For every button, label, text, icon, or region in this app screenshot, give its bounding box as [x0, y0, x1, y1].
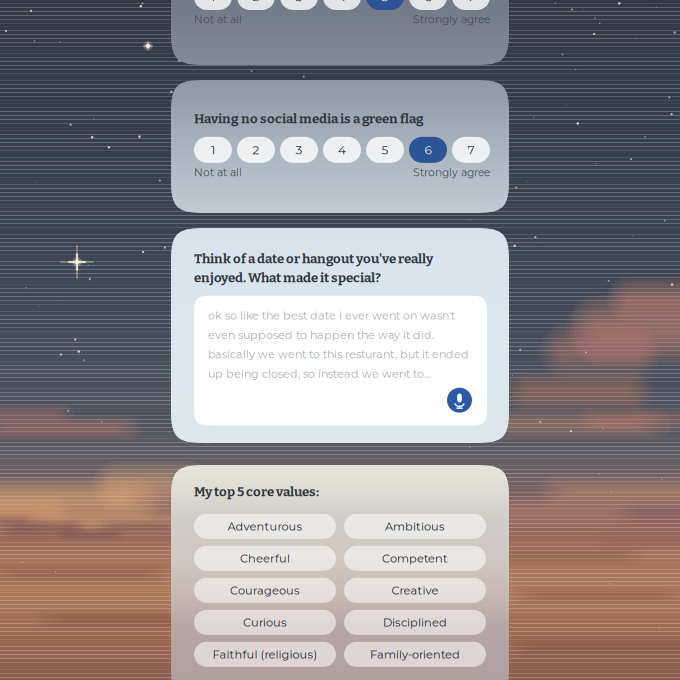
staticText: Creative [391, 583, 438, 597]
staticText: Disciplined [383, 615, 447, 629]
staticText: Ambitious [385, 519, 445, 533]
button[interactable]: Competent [344, 546, 486, 571]
staticText: Think of a date or hangout you've really [194, 251, 433, 267]
button[interactable]: 2 [237, 0, 275, 10]
button[interactable]: 2 [237, 137, 275, 163]
staticText: 3 [295, 142, 302, 157]
staticText: Competent [382, 551, 448, 565]
staticText: 4 [338, 0, 346, 4]
staticText: Not at all [194, 13, 242, 26]
staticText: 2 [252, 142, 259, 157]
button[interactable]: 7 [452, 0, 490, 10]
staticText: 7 [467, 142, 474, 157]
button[interactable]: Ambitious [344, 514, 486, 539]
button[interactable]: 1 [194, 137, 232, 163]
button[interactable]: 4 [323, 137, 361, 163]
button[interactable]: Curious [194, 610, 336, 635]
button[interactable]: Record voice answer [447, 388, 472, 413]
staticText: Faithful (religious) [212, 647, 317, 661]
staticText: 5 [381, 0, 388, 4]
staticText: 6 [424, 0, 431, 4]
staticText: ok so like the best date i ever went on … [208, 309, 455, 322]
staticText: My top 5 core values: [194, 484, 319, 500]
staticText: 1 [211, 142, 215, 157]
button[interactable]: 5 [366, 137, 404, 163]
staticText: Having no social media is a green flag [194, 111, 424, 127]
staticText: 7 [467, 0, 474, 4]
staticText: up being closed, so instead we went to… [208, 367, 431, 381]
staticText: Strongly agree [413, 13, 490, 26]
staticText: 5 [381, 142, 388, 157]
staticText: 3 [295, 0, 302, 4]
button[interactable]: 1 [194, 0, 232, 10]
staticText: Not at all [194, 166, 242, 179]
staticText: 4 [338, 142, 346, 157]
staticText: Adventurous [227, 519, 302, 533]
staticText: 2 [252, 0, 259, 4]
button[interactable]: Faithful (religious) [194, 642, 336, 667]
button[interactable]: Adventurous [194, 514, 336, 539]
button[interactable]: 6 [409, 0, 447, 10]
staticText: Cheerful [240, 551, 290, 565]
staticText: 6 [424, 142, 431, 157]
button[interactable]: 7 [452, 137, 490, 163]
staticText: Curious [243, 615, 287, 629]
button[interactable]: 5 [366, 0, 404, 10]
staticText: Courageous [230, 583, 300, 597]
button[interactable]: Creative [344, 578, 486, 603]
staticText: 1 [211, 0, 215, 4]
button[interactable]: 4 [323, 0, 361, 10]
staticText: enjoyed. What made it special? [194, 270, 381, 286]
staticText: Family-oriented [370, 647, 460, 661]
staticText: even supposed to happen the way it did. [208, 328, 434, 342]
button[interactable]: 3 [280, 137, 318, 163]
button[interactable]: Cheerful [194, 546, 336, 571]
button[interactable]: 3 [280, 0, 318, 10]
button[interactable]: Disciplined [344, 610, 486, 635]
button[interactable]: Courageous [194, 578, 336, 603]
staticText: Strongly agree [413, 166, 490, 179]
staticText: basically we went to this resturant, but… [208, 348, 469, 361]
button[interactable]: Family-oriented [344, 642, 486, 667]
button[interactable]: 6 [409, 137, 447, 163]
